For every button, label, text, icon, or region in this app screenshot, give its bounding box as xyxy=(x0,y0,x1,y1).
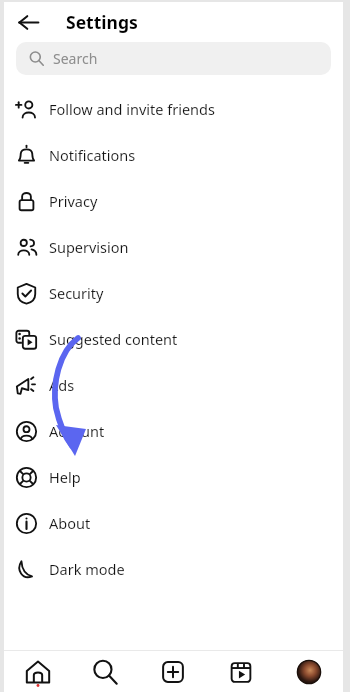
button[interactable]: Help xyxy=(4,454,343,500)
button[interactable]: Suggested content xyxy=(4,316,343,362)
button[interactable]: Home xyxy=(4,651,71,692)
button[interactable]: Follow and invite friends xyxy=(4,86,343,132)
button[interactable]: Profile xyxy=(275,651,343,692)
staticText: Supervision xyxy=(49,237,129,257)
button[interactable]: Reels xyxy=(207,651,275,692)
staticText: Security xyxy=(49,283,104,303)
staticText: Help xyxy=(49,467,81,487)
staticText: Account xyxy=(49,421,105,441)
button[interactable]: Ads xyxy=(4,362,343,408)
button[interactable]: Back xyxy=(11,5,45,39)
button[interactable]: About xyxy=(4,500,343,546)
staticText: Suggested content xyxy=(49,329,178,349)
staticText: Ads xyxy=(49,375,75,395)
button[interactable]: Account xyxy=(4,408,343,454)
button[interactable]: Privacy xyxy=(4,178,343,224)
staticText: Follow and invite friends xyxy=(49,99,215,119)
staticText: Dark mode xyxy=(49,559,125,579)
button[interactable]: Supervision xyxy=(4,224,343,270)
staticText: Notifications xyxy=(49,145,136,165)
button[interactable]: Dark mode xyxy=(4,546,343,592)
button[interactable]: Create xyxy=(139,651,207,692)
button[interactable]: Notifications xyxy=(4,132,343,178)
staticText: Privacy xyxy=(49,191,98,211)
button[interactable]: Search xyxy=(71,651,139,692)
staticText: Search xyxy=(53,49,98,68)
staticText: Settings xyxy=(66,10,138,34)
staticText: About xyxy=(49,513,91,533)
button[interactable]: Security xyxy=(4,270,343,316)
button[interactable]: Search xyxy=(16,42,331,75)
